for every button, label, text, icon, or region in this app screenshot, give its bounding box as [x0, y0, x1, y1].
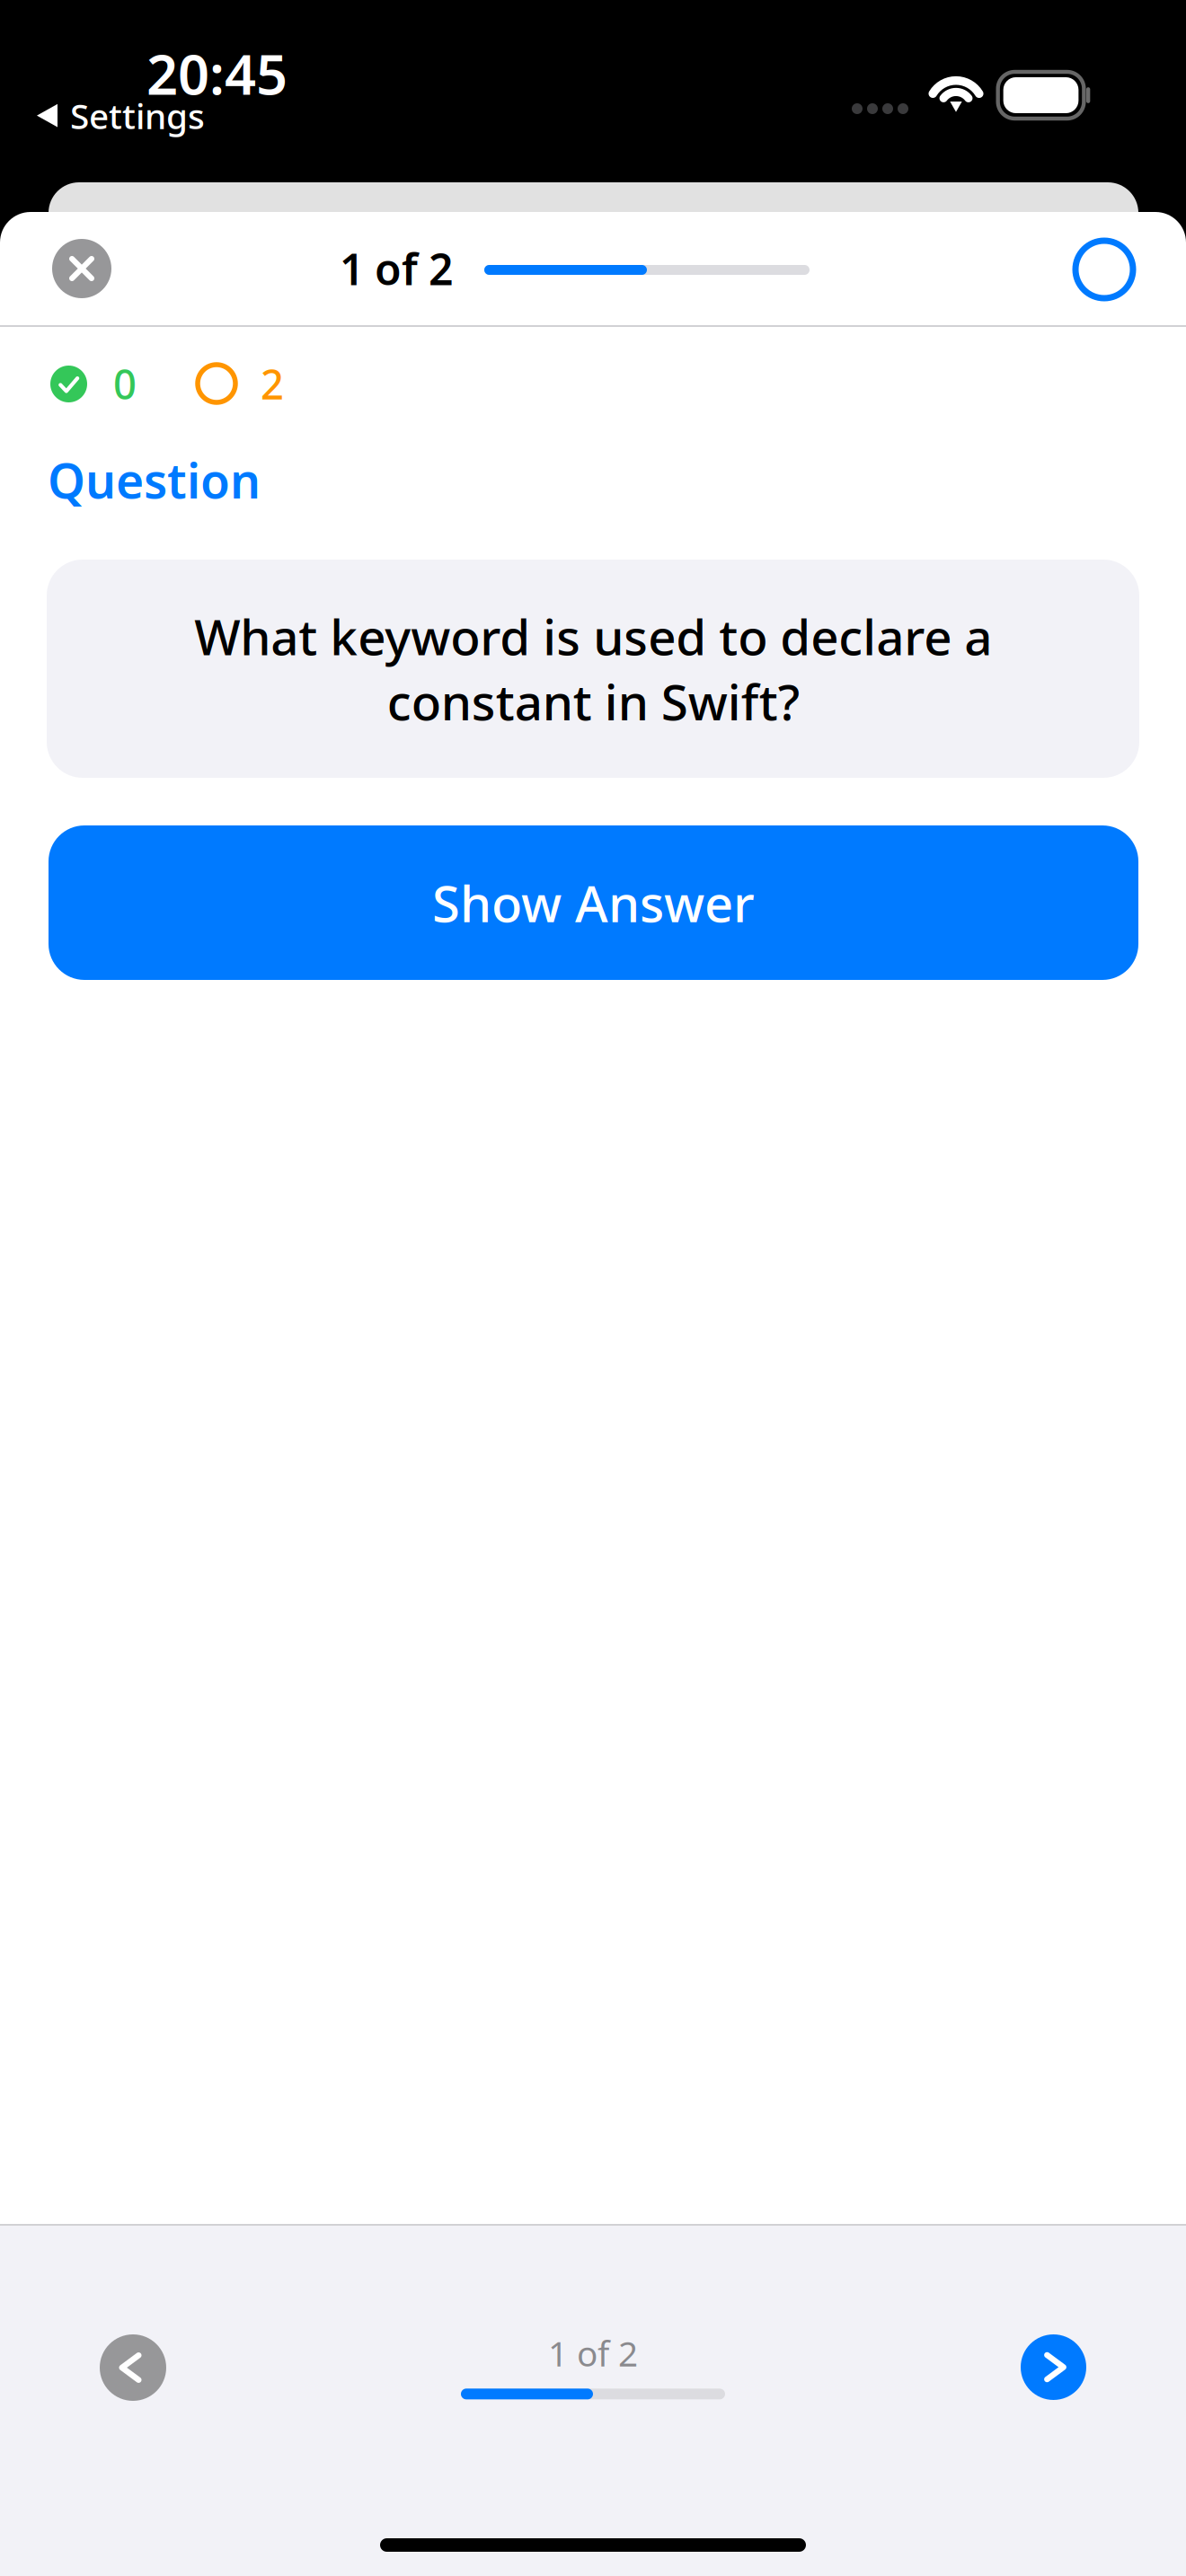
staticText: Settings: [70, 93, 205, 139]
button[interactable]: Next question: [1021, 2334, 1086, 2400]
staticText: 1 of 2: [340, 240, 453, 297]
button[interactable]: Settings: [37, 93, 205, 139]
staticText: What keyword is used to declare a consta…: [194, 603, 992, 734]
staticText: 1 of 2: [548, 2330, 638, 2376]
button[interactable]: Previous question: [100, 2334, 166, 2401]
button[interactable]: Show Answer: [49, 825, 1138, 980]
staticText: Question: [48, 448, 261, 512]
button[interactable]: Mark as answered: [1075, 241, 1133, 298]
staticText: Show Answer: [432, 869, 755, 936]
button[interactable]: Close: [52, 239, 111, 298]
staticText: 20:45: [146, 37, 288, 110]
staticText: 0: [113, 357, 137, 411]
staticText: 2: [261, 357, 284, 411]
